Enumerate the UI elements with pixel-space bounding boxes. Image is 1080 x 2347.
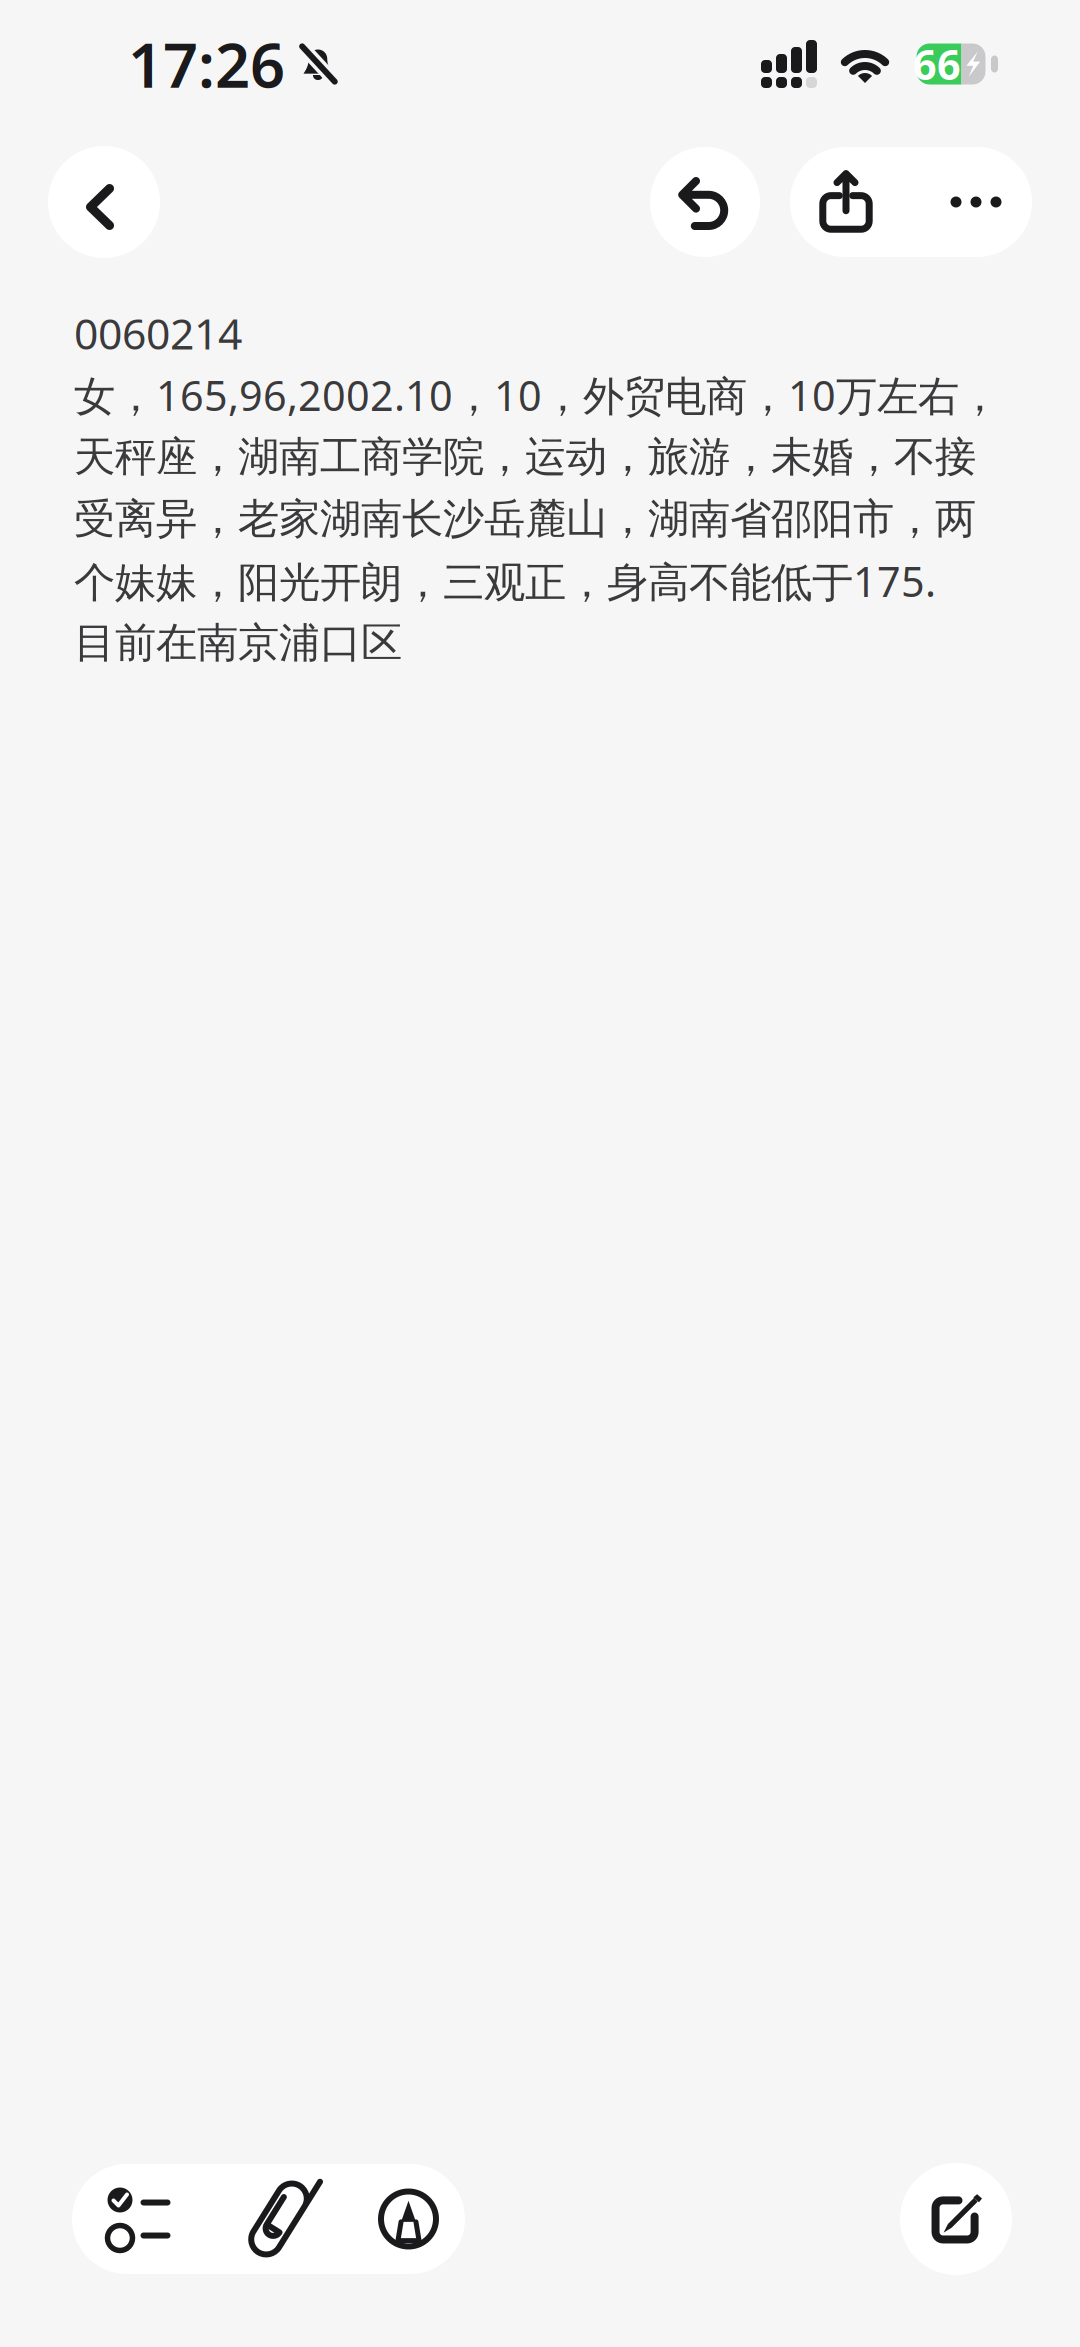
- button[interactable]: Back: [48, 146, 160, 258]
- button[interactable]: Undo: [650, 147, 760, 257]
- staticText: 受离异，老家湖南长沙岳麓山，湖南省邵阳市，两: [74, 494, 976, 544]
- button[interactable]: Compose: [900, 2163, 1012, 2275]
- staticText: 0060214: [74, 305, 242, 361]
- button[interactable]: More options: [902, 147, 1032, 257]
- button[interactable]: Share: [790, 147, 902, 257]
- staticText: 目前在南京浦口区: [74, 618, 402, 668]
- button[interactable]: Checklist: [72, 2164, 206, 2274]
- staticText: 66: [913, 37, 961, 91]
- button[interactable]: Attach file: [206, 2164, 352, 2274]
- staticText: 女，165,96,2002.10，10，外贸电商，10万左右，: [74, 368, 1000, 422]
- staticText: 17:26: [128, 23, 285, 105]
- button[interactable]: Markup: [352, 2164, 465, 2274]
- staticText: 个妹妹，阳光开朗，三观正，身高不能低于175.: [74, 554, 936, 608]
- staticText: 天秤座，湖南工商学院，运动，旅游，未婚，不接: [74, 432, 976, 482]
